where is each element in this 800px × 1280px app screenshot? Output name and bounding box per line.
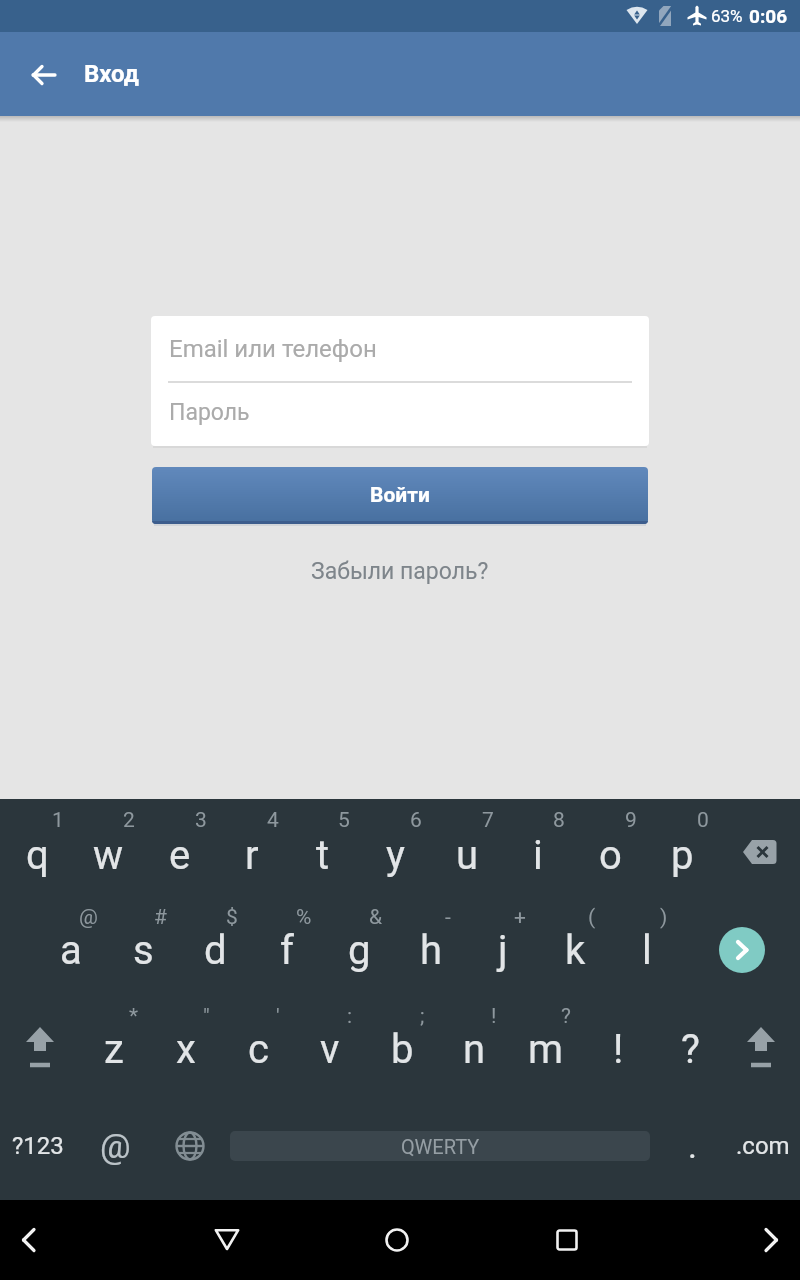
- staticText: d: [204, 927, 227, 974]
- button[interactable]: [6, 1216, 54, 1264]
- staticText: 0:06: [749, 5, 788, 27]
- button[interactable]: [373, 1216, 421, 1264]
- staticText: *: [129, 1004, 139, 1029]
- button[interactable]: [20, 51, 68, 99]
- staticText: 8: [553, 808, 565, 833]
- staticText: 9: [625, 808, 637, 833]
- staticText: w: [93, 832, 124, 879]
- button[interactable]: x: [150, 1003, 222, 1095]
- button[interactable]: @: [80, 1111, 150, 1181]
- button[interactable]: [543, 1216, 591, 1264]
- staticText: ?123: [12, 1132, 64, 1160]
- button[interactable]: Войти: [152, 467, 648, 524]
- button[interactable]: e: [144, 809, 216, 901]
- staticText: p: [671, 832, 694, 879]
- staticText: n: [463, 1026, 486, 1073]
- staticText: ?: [681, 1026, 700, 1073]
- button[interactable]: q: [1, 809, 73, 901]
- staticText: %: [296, 905, 312, 930]
- button[interactable]: [203, 1216, 251, 1264]
- staticText: 1: [52, 808, 64, 833]
- staticText: l: [642, 927, 652, 974]
- button[interactable]: Email или телефон: [151, 316, 649, 381]
- button[interactable]: .com: [727, 1111, 799, 1181]
- button[interactable]: !: [582, 1003, 654, 1095]
- button[interactable]: m: [510, 1003, 582, 1095]
- button[interactable]: [719, 927, 765, 973]
- button[interactable]: f: [251, 904, 323, 996]
- staticText: @: [79, 905, 98, 930]
- staticText: c: [248, 1026, 269, 1073]
- button[interactable]: p: [646, 809, 718, 901]
- button[interactable]: r: [216, 809, 288, 901]
- button[interactable]: ?123: [0, 1111, 76, 1181]
- button[interactable]: Пароль: [151, 382, 649, 446]
- staticText: x: [176, 1026, 196, 1073]
- button[interactable]: g: [323, 904, 395, 996]
- staticText: h: [420, 927, 443, 974]
- staticText: @: [100, 1126, 131, 1166]
- button[interactable]: [746, 1216, 794, 1264]
- staticText: Войти: [370, 483, 430, 508]
- button[interactable]: [4, 1003, 76, 1095]
- button[interactable]: QWERTY: [230, 1131, 650, 1161]
- staticText: Вход: [84, 60, 139, 88]
- staticText: &: [369, 905, 383, 930]
- staticText: a: [60, 927, 82, 974]
- staticText: .: [688, 1126, 697, 1166]
- staticText: g: [348, 927, 371, 974]
- button[interactable]: Забыли пароль?: [250, 549, 550, 593]
- button[interactable]: h: [395, 904, 467, 996]
- button[interactable]: w: [72, 809, 144, 901]
- staticText: ): [660, 905, 668, 930]
- button[interactable]: c: [222, 1003, 294, 1095]
- staticText: 5: [338, 808, 350, 833]
- button[interactable]: o: [574, 809, 646, 901]
- button[interactable]: [155, 1111, 225, 1181]
- staticText: ": [203, 1004, 210, 1029]
- staticText: z: [104, 1026, 124, 1073]
- button[interactable]: v: [294, 1003, 366, 1095]
- button[interactable]: a: [35, 904, 107, 996]
- staticText: +: [514, 905, 526, 930]
- staticText: Пароль: [169, 399, 250, 426]
- staticText: 3: [195, 808, 207, 833]
- button[interactable]: [725, 1003, 797, 1095]
- staticText: j: [498, 927, 508, 974]
- staticText: :: [347, 1004, 353, 1029]
- button[interactable]: y: [359, 809, 431, 901]
- button[interactable]: b: [366, 1003, 438, 1095]
- staticText: o: [599, 832, 622, 879]
- button[interactable]: z: [78, 1003, 150, 1095]
- button[interactable]: d: [179, 904, 251, 996]
- staticText: ;: [420, 1004, 425, 1029]
- button[interactable]: k: [539, 904, 611, 996]
- button[interactable]: ?: [654, 1003, 726, 1095]
- staticText: $: [226, 905, 238, 930]
- button[interactable]: s: [107, 904, 179, 996]
- button[interactable]: [724, 806, 796, 898]
- staticText: !: [491, 1004, 497, 1029]
- staticText: f: [280, 927, 294, 974]
- staticText: u: [456, 832, 479, 879]
- staticText: m: [528, 1026, 564, 1073]
- button[interactable]: j: [467, 904, 539, 996]
- staticText: Забыли пароль?: [311, 558, 489, 585]
- staticText: (: [588, 905, 596, 930]
- staticText: !: [613, 1026, 624, 1073]
- staticText: e: [169, 832, 191, 879]
- button[interactable]: t: [287, 809, 359, 901]
- staticText: t: [316, 832, 330, 879]
- staticText: ': [276, 1004, 280, 1029]
- button[interactable]: n: [438, 1003, 510, 1095]
- staticText: b: [391, 1026, 414, 1073]
- button[interactable]: i: [502, 809, 574, 901]
- staticText: 2: [123, 808, 135, 833]
- staticText: s: [133, 927, 154, 974]
- button[interactable]: u: [431, 809, 503, 901]
- button[interactable]: .: [667, 1111, 717, 1181]
- staticText: -: [445, 905, 451, 930]
- staticText: i: [533, 832, 543, 879]
- button[interactable]: l: [611, 904, 683, 996]
- staticText: ?: [561, 1004, 571, 1029]
